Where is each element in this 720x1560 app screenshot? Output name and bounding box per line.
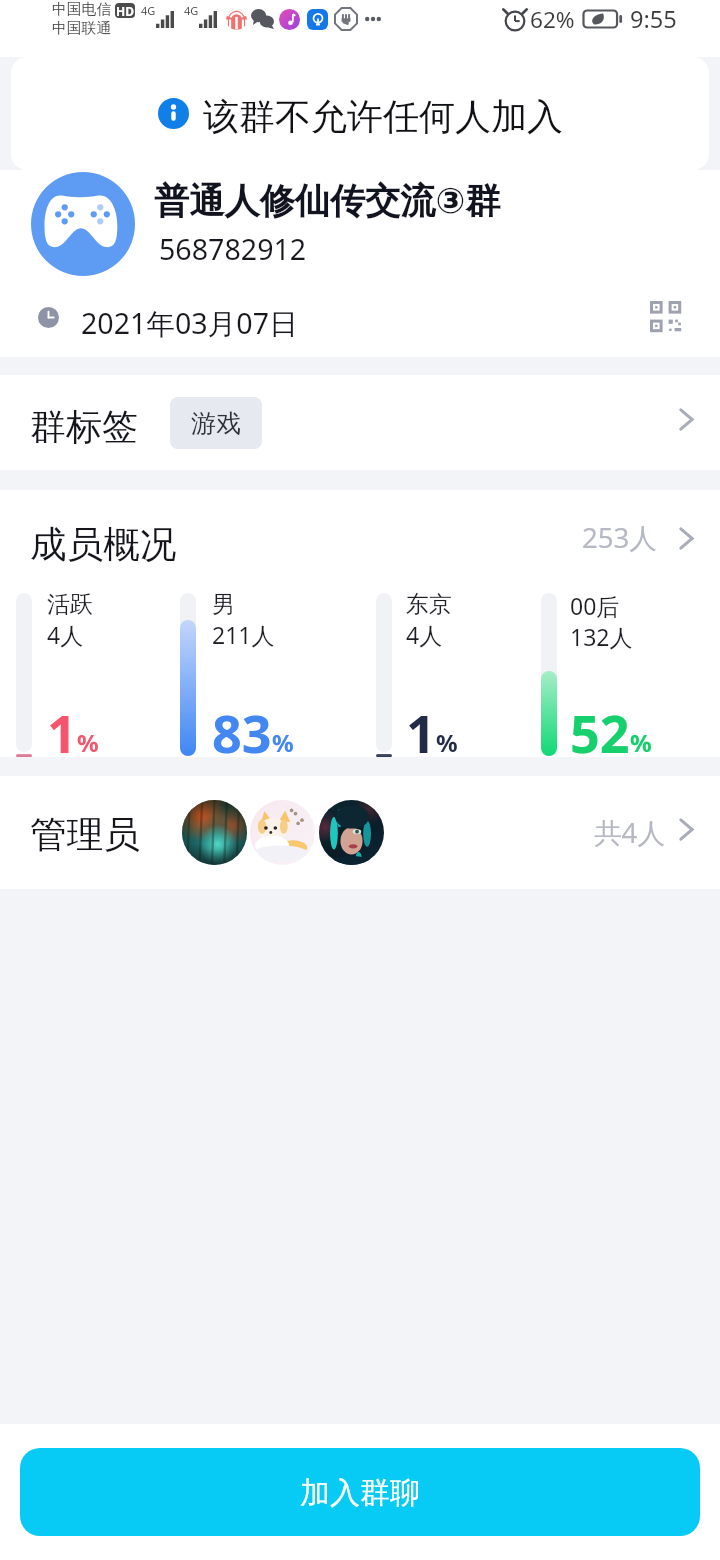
- button[interactable]: 管理员: [30, 776, 694, 889]
- staticText: 1: [406, 697, 436, 768]
- staticText: 132人: [570, 621, 633, 652]
- staticText: 游戏: [191, 408, 241, 439]
- staticText: 4G: [141, 3, 156, 18]
- button[interactable]: 加入群聊: [20, 1448, 700, 1536]
- staticText: 东京: [406, 590, 452, 619]
- button[interactable]: 成员概况: [30, 490, 694, 592]
- staticText: 4G: [184, 3, 199, 18]
- button[interactable]: Group QR code: [650, 301, 683, 334]
- staticText: 1: [47, 697, 77, 768]
- button[interactable]: 该群不允许任何人加入: [11, 57, 709, 170]
- staticText: 211人: [212, 619, 275, 650]
- staticText: 活跃: [47, 590, 93, 619]
- staticText: 该群不允许任何人加入: [203, 94, 563, 139]
- staticText: 中国联通: [52, 19, 112, 38]
- staticText: 4人: [406, 619, 443, 650]
- staticText: 9:55: [630, 3, 677, 35]
- staticText: %: [630, 726, 652, 759]
- staticText: 中国电信: [52, 0, 112, 19]
- staticText: 83: [212, 697, 272, 768]
- staticText: 男: [212, 590, 235, 619]
- staticText: 成员概况: [30, 522, 177, 568]
- staticText: 共4人: [594, 813, 665, 851]
- staticText: 52: [570, 697, 630, 768]
- staticText: %: [77, 726, 99, 759]
- button[interactable]: 普通人修仙传交流③群: [0, 170, 720, 277]
- button[interactable]: 群标签: [30, 375, 694, 470]
- staticText: 2021年03月07日: [81, 303, 298, 342]
- staticText: 群标签: [30, 404, 138, 449]
- staticText: 普通人修仙传交流③群: [154, 179, 501, 223]
- staticText: 加入群聊: [300, 1474, 420, 1512]
- staticText: 4人: [47, 619, 84, 650]
- staticText: 00后: [570, 590, 620, 621]
- staticText: 62%: [530, 4, 575, 35]
- staticText: 568782912: [159, 229, 307, 268]
- staticText: %: [436, 726, 458, 759]
- staticText: %: [272, 726, 294, 759]
- staticText: 管理员: [30, 812, 140, 858]
- staticText: HD: [116, 3, 134, 18]
- staticText: 253人: [582, 518, 657, 556]
